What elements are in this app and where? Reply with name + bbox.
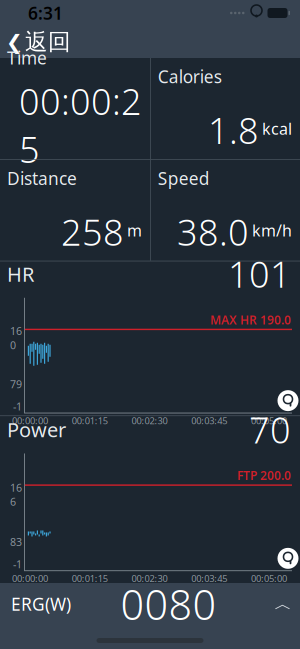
staticText: 00:00:25 <box>19 77 142 173</box>
staticText: 00:01:15 <box>72 414 108 427</box>
staticText: Power <box>7 416 66 443</box>
staticText: Speed <box>158 167 210 190</box>
staticText: HR <box>7 261 34 287</box>
staticText: -1 <box>13 399 22 413</box>
staticText: 166 <box>10 480 22 509</box>
staticText: km/h <box>252 220 292 241</box>
staticText: 00:00:00 <box>12 572 48 584</box>
staticText: 83 <box>10 535 22 549</box>
button[interactable]: ❮ <box>0 26 71 58</box>
staticText: 00:02:30 <box>131 414 167 427</box>
staticText: 00:03:45 <box>191 572 227 584</box>
staticText: FTP 200.0 <box>237 467 291 483</box>
staticText: 00:03:45 <box>191 414 227 427</box>
staticText: MAX HR 190.0 <box>210 312 291 328</box>
staticText: 00:00:00 <box>12 414 48 427</box>
button[interactable]: Zoom chart <box>276 546 300 570</box>
staticText: 6:31 <box>28 1 63 24</box>
staticText: Calories <box>158 65 222 88</box>
staticText: 1.8 <box>208 106 259 154</box>
staticText: 0080 <box>120 577 216 631</box>
staticText: 38.0 <box>177 208 249 256</box>
staticText: 00:02:30 <box>131 572 167 584</box>
staticText: 00:05:00 <box>251 414 287 427</box>
staticText: 70 <box>249 406 291 453</box>
button[interactable]: Zoom chart <box>276 389 300 413</box>
button[interactable]: Expand ERG controls <box>266 587 300 621</box>
staticText: 00:05:00 <box>251 572 287 584</box>
staticText: Distance <box>7 167 77 190</box>
staticText: 160 <box>10 324 22 352</box>
staticText: Time <box>7 46 47 69</box>
staticText: 00:01:15 <box>72 572 108 584</box>
staticText: 79 <box>10 377 22 391</box>
staticText: ︿ <box>274 593 291 615</box>
staticText: kcal <box>262 118 292 139</box>
staticText: -1 <box>13 557 22 571</box>
staticText: ERG(W) <box>11 592 71 615</box>
staticText: m <box>127 220 142 241</box>
staticText: ❮ <box>6 31 23 53</box>
staticText: 返回 <box>25 28 71 56</box>
staticText: 258 <box>61 208 124 256</box>
staticText: 101 <box>228 250 291 298</box>
